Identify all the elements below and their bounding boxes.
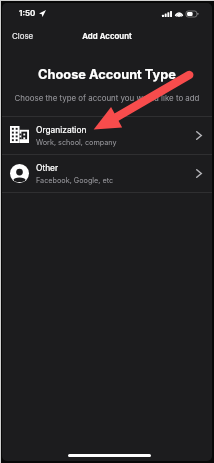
other: Other [10, 164, 29, 183]
button[interactable]: Organization [2, 116, 212, 154]
staticText: Close [12, 31, 34, 41]
button[interactable]: Other [2, 154, 212, 192]
staticText: Facebook, Google, etc [36, 176, 114, 185]
staticText: 1:50 [19, 8, 36, 18]
staticText: Other [36, 163, 59, 173]
staticText: Work, school, company [36, 138, 117, 147]
staticText: Choose the type of account you would lik… [2, 93, 212, 103]
staticText: Choose Account Type [2, 67, 212, 82]
other: Organization [10, 126, 29, 143]
staticText: Organization [36, 125, 87, 135]
staticText: Add Account [2, 31, 212, 41]
button[interactable]: Close [4, 26, 42, 46]
